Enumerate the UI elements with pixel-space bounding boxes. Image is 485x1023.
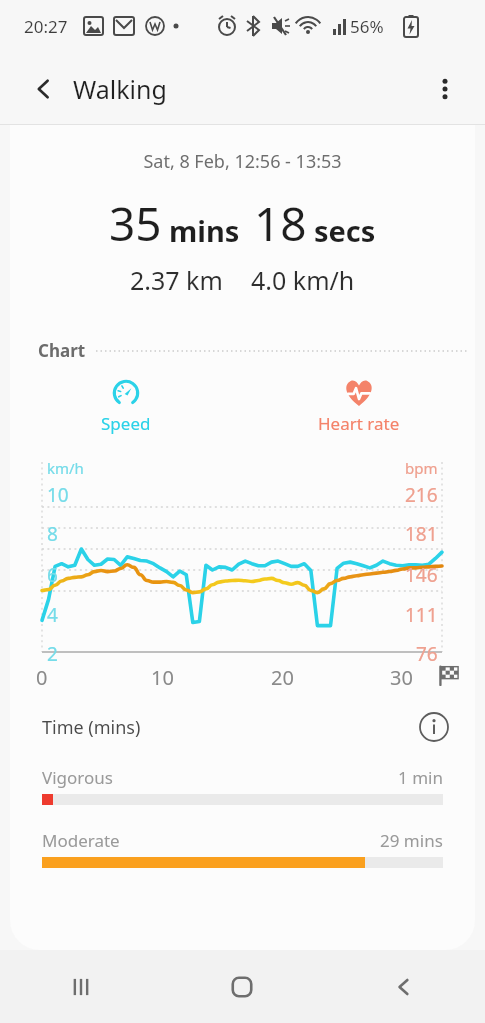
staticText: 1 min: [398, 766, 443, 789]
staticText: 29 mins: [380, 829, 443, 852]
staticText: 20:27: [24, 15, 68, 38]
staticText: 30: [390, 664, 413, 691]
staticText: 111: [405, 602, 438, 628]
staticText: 0: [36, 664, 48, 691]
staticText: bpm: [405, 458, 438, 478]
staticText: 10: [151, 664, 174, 691]
staticText: secs: [314, 211, 376, 250]
button[interactable]: Back: [323, 950, 485, 1023]
button[interactable]: Heart rate: [279, 378, 439, 448]
staticText: Time (mins): [42, 715, 141, 740]
staticText: mins: [169, 211, 240, 250]
staticText: Walking: [73, 72, 167, 106]
staticText: Heart rate: [318, 412, 400, 435]
staticText: 181: [405, 521, 438, 547]
staticText: km/h: [47, 458, 84, 478]
staticText: 146: [405, 562, 438, 588]
button[interactable]: Recents: [0, 950, 161, 1023]
button[interactable]: Information: [413, 706, 455, 748]
staticText: 4.0 km/h: [251, 263, 355, 297]
staticText: 20: [271, 664, 294, 691]
staticText: 4: [47, 602, 58, 628]
staticText: 216: [405, 482, 438, 508]
staticText: 6: [47, 562, 58, 588]
button[interactable]: Home: [161, 950, 323, 1023]
staticText: 10: [47, 482, 69, 508]
button[interactable]: Back: [20, 65, 68, 113]
staticText: 2.37 km: [130, 263, 223, 297]
staticText: 2: [47, 641, 58, 667]
staticText: 8: [47, 521, 58, 547]
staticText: Speed: [101, 412, 151, 435]
staticText: Moderate: [42, 829, 120, 852]
staticText: Chart: [38, 339, 86, 362]
staticText: 76: [416, 641, 438, 667]
button[interactable]: More options: [421, 65, 469, 113]
staticText: 18: [254, 192, 307, 255]
staticText: 56%: [350, 15, 384, 38]
button[interactable]: Speed: [46, 378, 206, 448]
staticText: Sat, 8 Feb, 12:56 - 13:53: [10, 149, 475, 174]
staticText: 35: [109, 192, 162, 255]
staticText: Vigorous: [42, 766, 113, 789]
